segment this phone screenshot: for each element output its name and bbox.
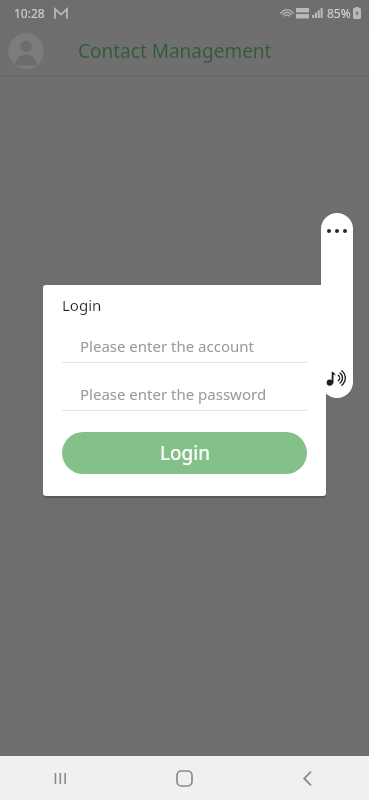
staticText: 85% [327, 5, 351, 21]
staticText: Please enter the account [80, 336, 254, 356]
staticText: Please enter the password [80, 384, 267, 404]
staticText: Contact Management [78, 38, 272, 64]
button[interactable]: Recent apps [0, 756, 123, 800]
button[interactable]: Please enter the account [62, 328, 307, 363]
staticText: 10:28 [14, 5, 45, 21]
button[interactable]: Please enter the password [62, 376, 307, 411]
button[interactable]: Profile [8, 33, 44, 69]
button[interactable]: Login [62, 432, 307, 474]
staticText: Login [160, 440, 210, 466]
staticText: Login [62, 295, 102, 315]
button[interactable]: Back [246, 756, 369, 800]
button[interactable]: Home [123, 756, 246, 800]
button[interactable]: Floating assistant panel [321, 213, 353, 398]
